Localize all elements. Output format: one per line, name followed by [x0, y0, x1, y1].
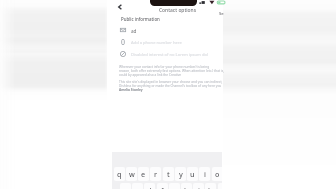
staticText: Amelia Stanley: [119, 88, 143, 92]
staticText: This site site's displayed in browser yo…: [119, 80, 225, 84]
button[interactable]: j: [193, 183, 204, 189]
button[interactable]: Disabled interest of no Lorem ipsum dol: [112, 49, 222, 60]
button[interactable]: i: [199, 167, 210, 181]
staticText: w: [129, 169, 135, 179]
button[interactable]: y: [175, 167, 186, 181]
staticText: t: [167, 169, 170, 179]
button[interactable]: t: [163, 167, 174, 181]
button[interactable]: w: [126, 167, 137, 181]
button[interactable]: d: [144, 183, 155, 189]
button[interactable]: q: [114, 167, 125, 181]
staticText: d: [147, 185, 152, 189]
button[interactable]: h: [181, 183, 192, 189]
staticText: Contact options: [159, 7, 197, 14]
staticText: Dishless for anything or made the Channe…: [119, 84, 225, 88]
button[interactable]: r: [150, 167, 161, 181]
staticText: q: [117, 169, 122, 179]
staticText: reason, both offer extremely fast option…: [119, 69, 225, 73]
staticText: Add a phone number here: [131, 40, 182, 46]
staticText: o: [215, 169, 220, 179]
staticText: h: [184, 185, 189, 189]
button[interactable]: Add a phone number here: [112, 37, 222, 48]
staticText: j: [198, 185, 200, 189]
staticText: Public information: [121, 16, 160, 22]
staticText: f: [161, 185, 164, 189]
staticText: i: [204, 169, 206, 179]
button[interactable]: Back: [115, 2, 125, 12]
staticText: Disabled interest of no Lorem ipsum dol: [131, 52, 209, 58]
staticText: k: [208, 185, 213, 189]
button[interactable]: k: [205, 183, 216, 189]
staticText: u: [190, 169, 195, 179]
button[interactable]: ad: [112, 25, 222, 36]
staticText: r: [154, 169, 158, 179]
button[interactable]: u: [187, 167, 198, 181]
staticText: e: [141, 169, 146, 179]
staticText: Se: [219, 11, 224, 17]
staticText: could by appeared also a link the Creati…: [119, 73, 182, 77]
button[interactable]: o: [212, 167, 222, 181]
staticText: y: [179, 169, 183, 179]
staticText: ad: [131, 28, 137, 34]
button[interactable]: e: [138, 167, 149, 181]
staticText: Wherever your contact info (or your phon…: [119, 65, 225, 69]
button[interactable]: f: [157, 183, 168, 189]
